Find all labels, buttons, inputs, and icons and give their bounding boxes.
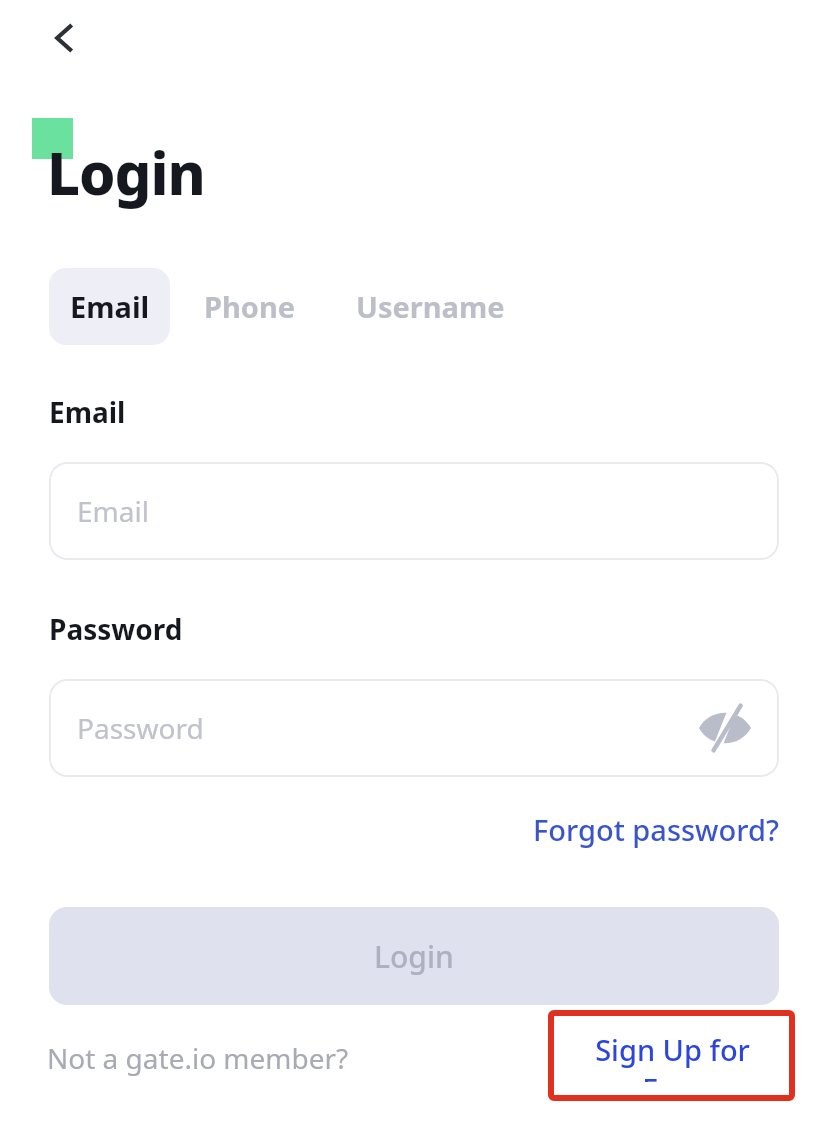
button[interactable]: Forgot password? (500, 800, 779, 858)
button[interactable]: Email (49, 462, 779, 560)
staticText: Not a gate.io member? (47, 1039, 349, 1077)
staticText: Phone (204, 287, 296, 326)
staticText: Sign Up for Free (563, 1030, 782, 1082)
staticText: Login (47, 133, 205, 212)
button[interactable]: Show password (697, 700, 753, 756)
staticText: Username (356, 287, 505, 326)
button[interactable]: Email (49, 268, 170, 345)
button[interactable]: Password (49, 679, 779, 777)
button[interactable]: Login (49, 907, 779, 1005)
staticText: Forgot password? (533, 810, 779, 849)
staticText: Password (49, 610, 183, 648)
button[interactable]: Back (34, 8, 94, 68)
staticText: Email (49, 393, 126, 431)
staticText: Email (77, 492, 149, 530)
button[interactable]: Sign Up for Free (563, 1030, 782, 1082)
button[interactable]: Username (330, 268, 530, 345)
staticText: Email (70, 287, 150, 326)
button[interactable]: Phone (170, 268, 330, 345)
staticText: Password (77, 709, 204, 747)
staticText: Login (374, 936, 454, 977)
